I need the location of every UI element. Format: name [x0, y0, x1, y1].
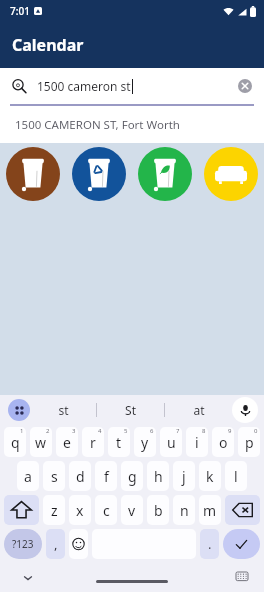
button[interactable]: Yard waste cart [138, 147, 192, 201]
staticText: v [128, 501, 136, 520]
button[interactable]: ?123 [4, 529, 42, 559]
button[interactable]: p [238, 427, 260, 457]
button[interactable]: v [121, 495, 143, 525]
staticText: e [63, 433, 71, 452]
button[interactable]: at [165, 395, 232, 425]
button[interactable]: e [56, 427, 78, 457]
button[interactable]: w [30, 427, 52, 457]
button[interactable]: r [82, 427, 104, 457]
staticText: 9 [228, 427, 232, 435]
button[interactable]: h [147, 461, 169, 491]
button[interactable]: . [200, 529, 219, 559]
staticText: 4 [98, 427, 102, 435]
button[interactable]: Clear [230, 71, 260, 101]
staticText: x [76, 501, 84, 520]
button[interactable]: st [30, 395, 96, 425]
button[interactable]: o [212, 427, 234, 457]
staticText: u [167, 433, 176, 452]
staticText: . [208, 535, 212, 553]
button[interactable]: Shift [4, 495, 39, 525]
button[interactable]: q [4, 427, 26, 457]
button[interactable]: Voice input [232, 397, 258, 423]
staticText: h [154, 467, 163, 486]
staticText: 3 [72, 427, 76, 435]
staticText: St [125, 402, 136, 418]
button[interactable]: Food waste cart [6, 147, 60, 201]
staticText: 6 [150, 427, 154, 435]
button[interactable]: n [173, 495, 195, 525]
button[interactable]: Home [96, 580, 168, 583]
button[interactable]: y [134, 427, 156, 457]
staticText: ?123 [12, 537, 34, 551]
staticText: r [90, 433, 96, 452]
button[interactable]: Bulk pickup [204, 147, 258, 201]
staticText: i [195, 433, 199, 452]
staticText: 1500 CAMERON ST, Fort Worth [15, 117, 180, 133]
staticText: g [128, 467, 137, 486]
button[interactable]: u [160, 427, 182, 457]
staticText: 7:01 [10, 4, 30, 18]
staticText: st [58, 402, 69, 418]
staticText: c [103, 501, 110, 520]
staticText: d [76, 467, 85, 486]
staticText: 7 [176, 427, 180, 435]
staticText: o [219, 433, 228, 452]
other: Search [12, 79, 27, 94]
button[interactable]: Hide keyboard [18, 568, 38, 588]
button[interactable]: d [69, 461, 91, 491]
staticText: 8 [202, 427, 206, 435]
button[interactable]: x [69, 495, 91, 525]
button[interactable]: k [199, 461, 221, 491]
button[interactable]: m [199, 495, 221, 525]
button[interactable]: f [95, 461, 117, 491]
button[interactable]: Toolbar [8, 399, 30, 421]
staticText: q [11, 433, 20, 452]
staticText: 5 [124, 427, 128, 435]
staticText: s [51, 467, 58, 486]
button[interactable]: a [17, 461, 39, 491]
button[interactable]: Search [0, 68, 264, 104]
staticText: z [51, 501, 58, 520]
staticText: , [54, 535, 58, 553]
button[interactable]: i [186, 427, 208, 457]
staticText: Calendar [12, 34, 84, 56]
button[interactable]: c [95, 495, 117, 525]
staticText: w [35, 433, 47, 452]
button[interactable]: St [97, 395, 164, 425]
button[interactable]: b [147, 495, 169, 525]
button[interactable]: Enter [223, 529, 260, 559]
button[interactable]: s [43, 461, 65, 491]
staticText: k [206, 467, 214, 486]
button[interactable]: z [43, 495, 65, 525]
button[interactable]: Switch keyboard [232, 568, 252, 588]
button[interactable]: , [46, 529, 65, 559]
staticText: n [180, 501, 189, 520]
staticText: 2 [46, 427, 50, 435]
staticText: f [104, 467, 109, 486]
staticText: t [116, 433, 122, 452]
button[interactable]: t [108, 427, 130, 457]
staticText: a [24, 467, 32, 486]
button[interactable]: Emoji [69, 529, 88, 559]
staticText: 1500 cameron st [37, 78, 131, 94]
button[interactable]: g [121, 461, 143, 491]
button[interactable]: l [225, 461, 247, 491]
staticText: p [245, 433, 254, 452]
staticText: l [234, 467, 238, 486]
staticText: m [203, 501, 217, 520]
button[interactable]: Recycling cart [72, 147, 126, 201]
staticText: 1 [20, 427, 24, 435]
button[interactable]: 1500 CAMERON ST, Fort Worth [0, 106, 264, 143]
button[interactable]: j [173, 461, 195, 491]
staticText: 0 [254, 427, 258, 435]
staticText: at [193, 402, 205, 418]
staticText: b [154, 501, 163, 520]
staticText: j [182, 467, 186, 486]
button[interactable]: Backspace [225, 495, 260, 525]
staticText: y [141, 433, 149, 452]
